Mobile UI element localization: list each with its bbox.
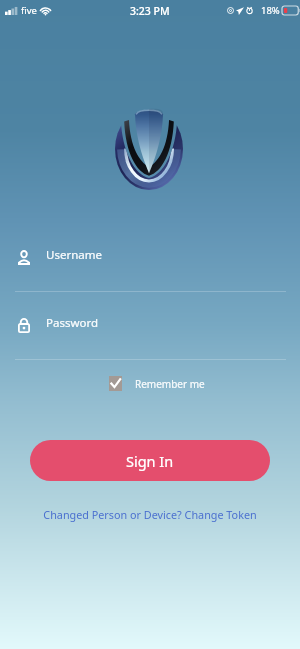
staticText: five [21,4,37,17]
button[interactable]: Sign In [30,440,270,481]
staticText: Changed Person or Device? Change Token [43,507,257,522]
staticText: Remember me [135,377,205,391]
staticText: 18% [261,4,280,17]
button[interactable]: Remember me [109,376,205,391]
staticText: 3:23 PM [130,4,170,18]
staticText: Sign In [126,451,174,471]
staticText: Username [46,247,102,263]
staticText: Password [46,315,99,331]
button[interactable]: Username [0,243,300,293]
button[interactable]: Changed Person or Device? Change Token [0,505,300,523]
button[interactable]: Password [0,311,300,361]
